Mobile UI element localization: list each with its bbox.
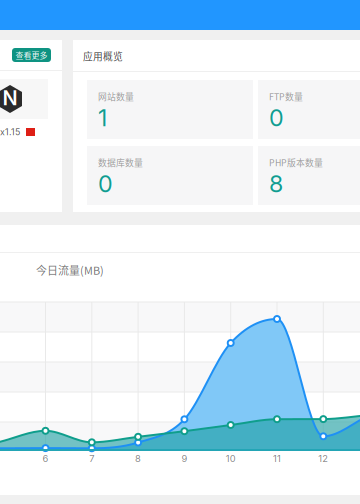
staticText: 10 (226, 453, 236, 464)
staticText: 9 (181, 453, 187, 464)
staticText: 8 (135, 453, 141, 464)
button[interactable]: 查看更多 (12, 48, 51, 62)
staticText: 0 (98, 170, 113, 198)
staticText: 12 (318, 453, 328, 464)
staticText: 今日流量(MB) (36, 262, 104, 278)
staticText: 查看更多 (15, 49, 47, 61)
staticText: 11 (273, 453, 281, 464)
staticText: 网站数量 (98, 90, 134, 103)
staticText: 6 (42, 453, 48, 464)
staticText: 数据库数量 (98, 156, 143, 169)
staticText: 应用概览 (83, 49, 123, 63)
staticText: PHP版本数量 (269, 156, 323, 169)
staticText: N (2, 86, 17, 110)
staticText: 7 (89, 453, 94, 464)
staticText: 1 (98, 104, 107, 132)
staticText: FTP数量 (269, 90, 303, 103)
staticText: 0 (269, 104, 284, 132)
staticText: x1.15 (0, 127, 20, 137)
staticText: 8 (269, 170, 283, 198)
